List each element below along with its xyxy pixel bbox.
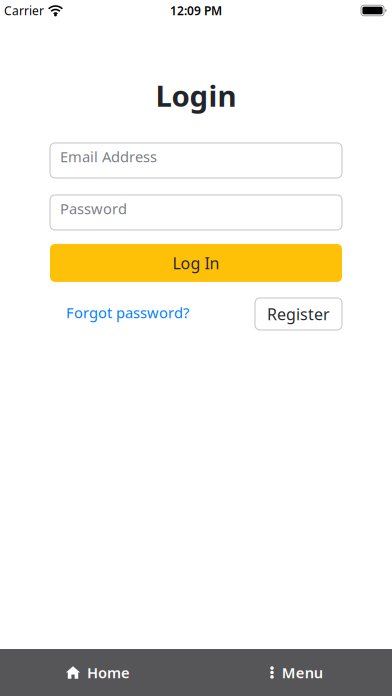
staticText: Login: [155, 76, 236, 115]
staticText: Carrier: [4, 2, 44, 18]
staticText: Forgot password?: [66, 303, 189, 322]
button[interactable]: Menu: [196, 649, 392, 696]
staticText: Password: [60, 199, 127, 218]
button[interactable]: Home: [0, 649, 196, 696]
button[interactable]: Forgot password?: [66, 303, 189, 325]
staticText: Log In: [172, 252, 219, 273]
staticText: Register: [267, 303, 330, 324]
staticText: Menu: [282, 663, 323, 682]
button[interactable]: Log In: [50, 244, 342, 282]
button[interactable]: Register: [255, 298, 342, 330]
staticText: Email Address: [60, 147, 157, 166]
staticText: Home: [87, 663, 130, 682]
staticText: 12:09 PM: [170, 2, 222, 18]
